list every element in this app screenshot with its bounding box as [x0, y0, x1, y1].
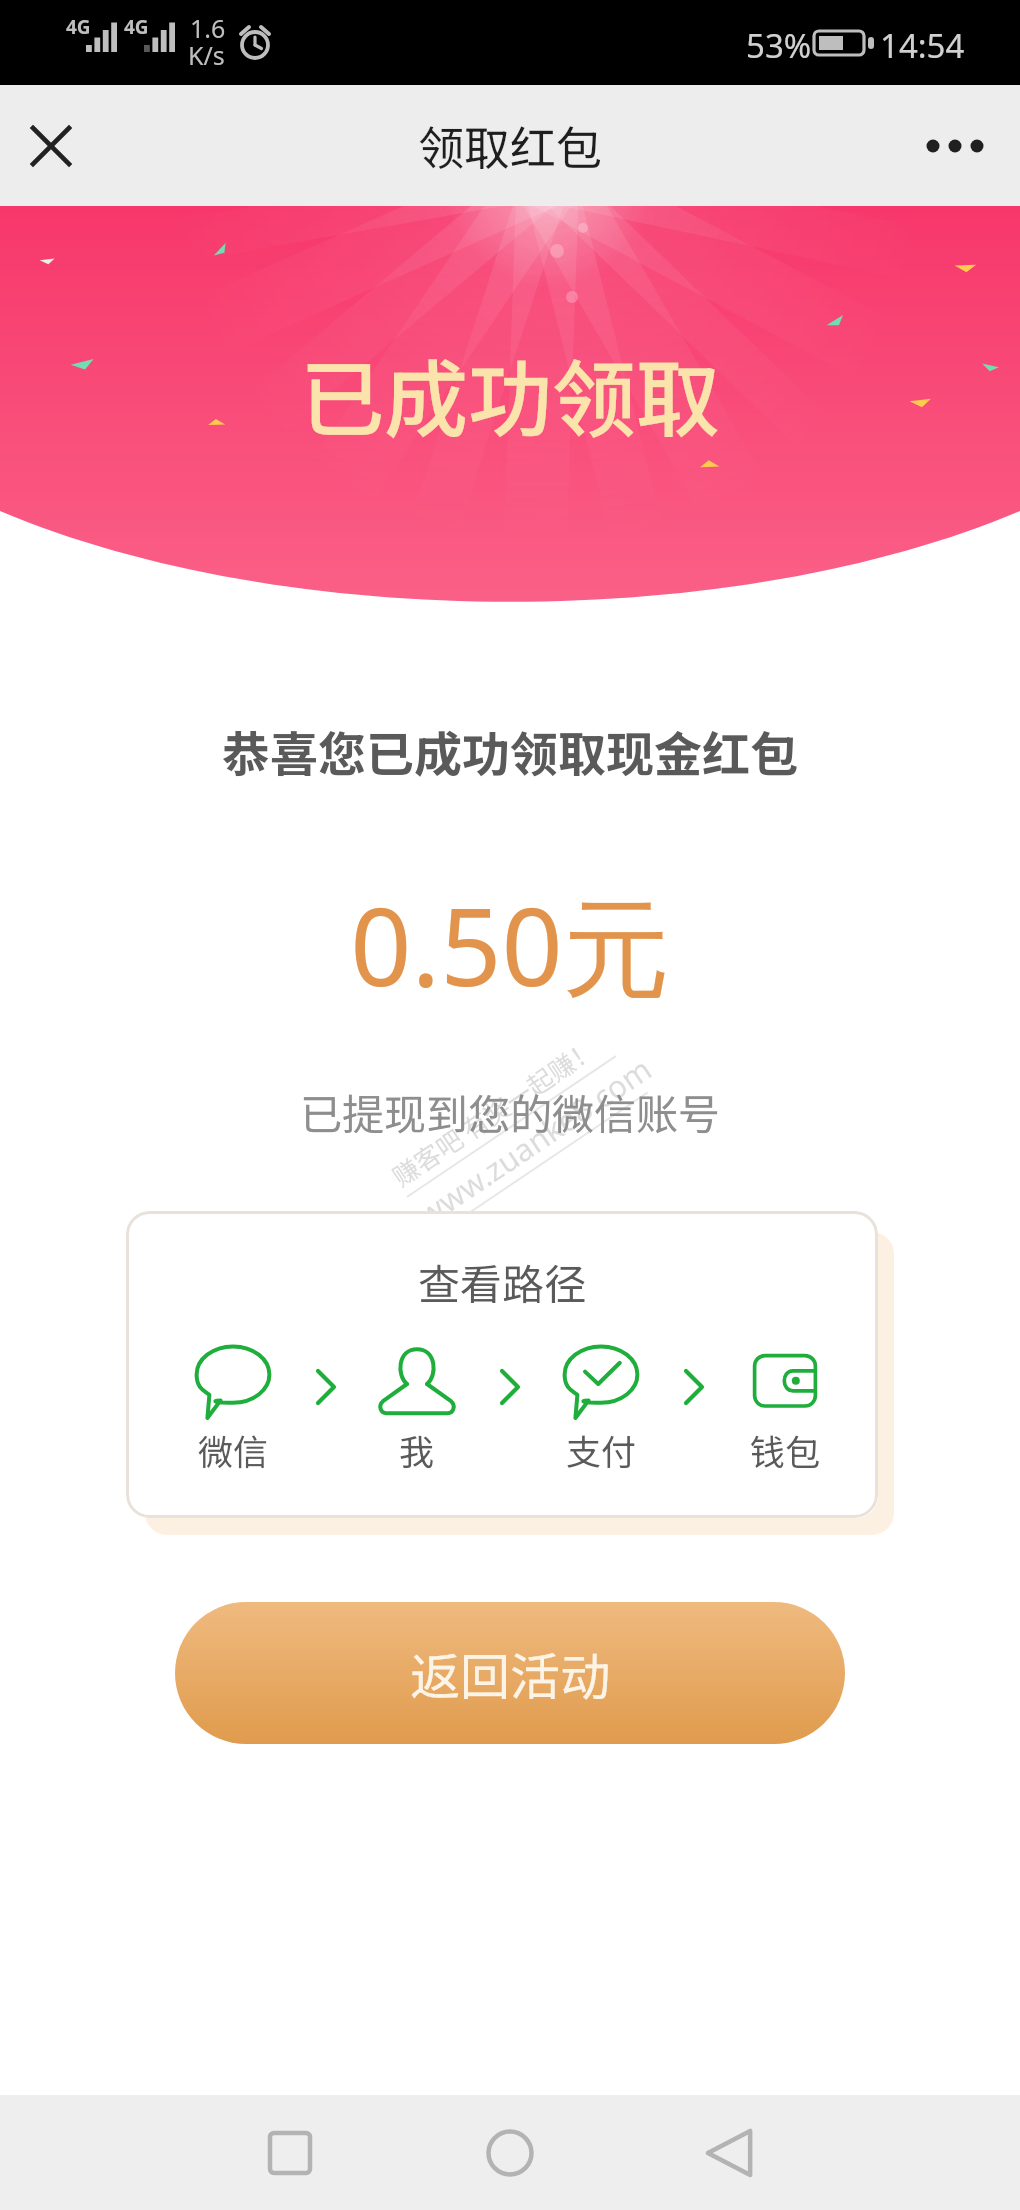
button[interactable]: Recents — [245, 2108, 335, 2198]
button[interactable]: More options — [915, 106, 995, 186]
button[interactable]: Home — [465, 2108, 555, 2198]
staticText: 赚客吧 有奖一起赚！ — [384, 1029, 604, 1194]
button[interactable]: 微信 — [164, 1344, 302, 1475]
staticText: 4G — [124, 14, 149, 40]
staticText: 领取红包 — [418, 112, 602, 179]
button[interactable]: 我 — [348, 1344, 486, 1475]
button[interactable]: 钱包 — [716, 1344, 854, 1475]
staticText: 4G — [66, 14, 91, 40]
staticText: 查看路径 — [126, 1251, 878, 1312]
button[interactable]: Close — [21, 116, 81, 176]
staticText: 0.50元 — [0, 872, 1020, 1018]
staticText: 1.6 — [190, 11, 226, 45]
staticText: 14:54 — [880, 23, 965, 68]
button[interactable]: 支付 — [532, 1344, 670, 1475]
staticText: 支付 — [566, 1424, 637, 1475]
staticText: 已成功领取 — [0, 333, 1020, 455]
staticText: 我 — [399, 1424, 435, 1475]
staticText: K/s — [188, 38, 225, 72]
button[interactable]: Back — [685, 2108, 775, 2198]
staticText: 已提现到您的微信账号 — [0, 1081, 1020, 1142]
staticText: 恭喜您已成功领取现金红包 — [0, 716, 1020, 786]
staticText: www.zuanke8.com — [409, 1047, 660, 1235]
staticText: 返回活动 — [410, 1637, 610, 1709]
staticText: 钱包 — [750, 1424, 821, 1475]
staticText: 微信 — [198, 1424, 269, 1475]
button[interactable]: 返回活动 — [175, 1602, 845, 1744]
button[interactable]: 查看路径 — [126, 1211, 878, 1518]
staticText: 53% — [746, 23, 812, 68]
